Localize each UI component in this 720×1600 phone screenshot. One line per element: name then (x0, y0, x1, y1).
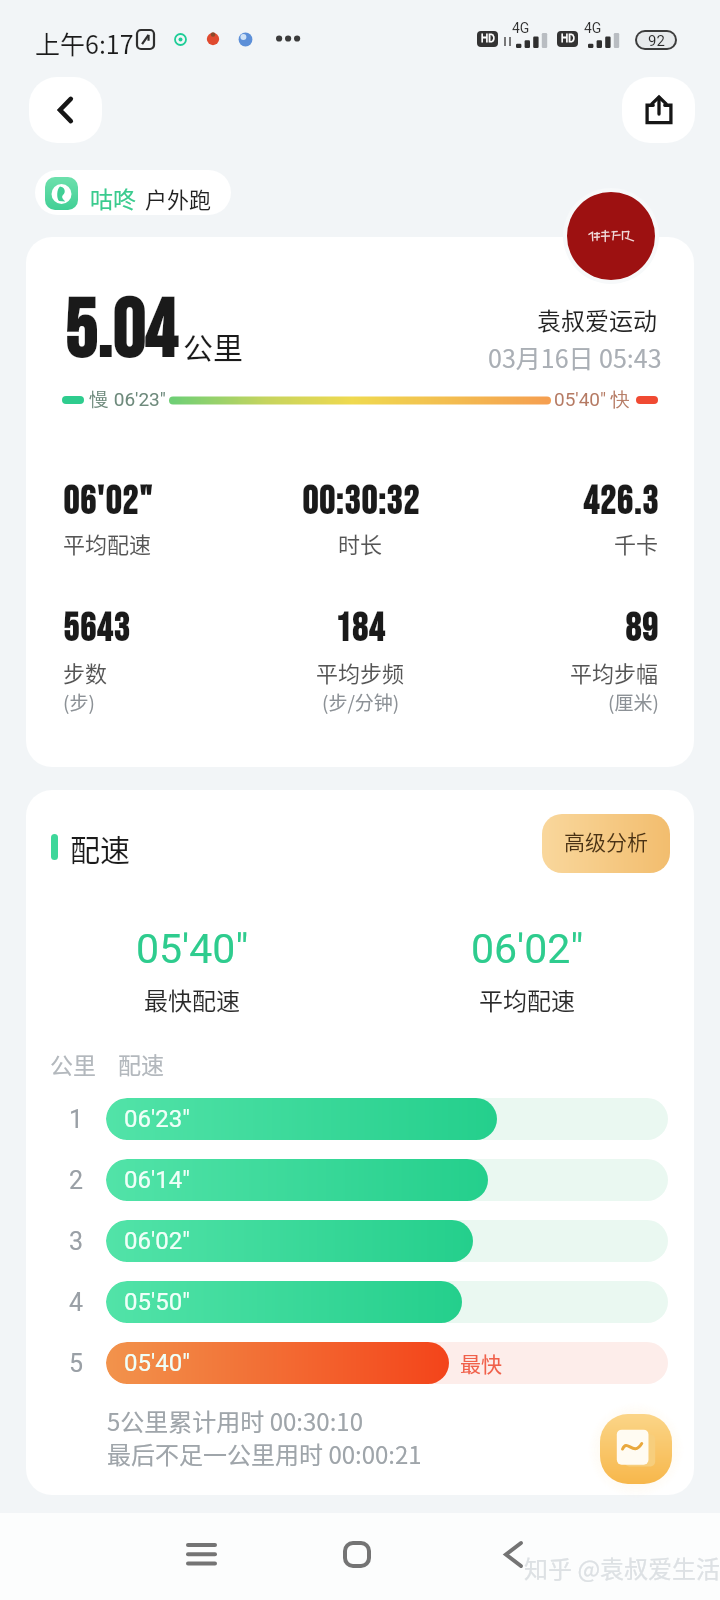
button[interactable]: Share (622, 77, 695, 143)
staticText: 千卡 (614, 527, 659, 559)
staticText: 步数 (63, 656, 108, 688)
staticText: HD (561, 33, 575, 45)
button[interactable]: Home (317, 1524, 397, 1584)
staticText: 平均步频 (316, 656, 405, 688)
staticText: 06'02" (124, 1227, 190, 1255)
staticText: 配速 (118, 1047, 164, 1080)
staticText: 5643 (63, 606, 131, 653)
staticText: 最后不足一公里用时 00:00:21 (107, 1436, 422, 1471)
staticText: 06'02" (63, 479, 154, 526)
staticText: 户外跑 (145, 182, 212, 214)
staticText: 高级分析 (564, 826, 648, 856)
staticText: 184 (335, 606, 386, 653)
button[interactable]: 06'23" (106, 1098, 668, 1140)
staticText: (厘米) (608, 688, 659, 716)
staticText: 426.3 (583, 479, 659, 526)
button[interactable]: 05'50" (106, 1281, 668, 1323)
button[interactable]: Feedback (600, 1414, 672, 1484)
staticText: 1 (69, 1105, 84, 1134)
staticText: 袁叔爱运动 (537, 302, 657, 337)
staticText: 92 (648, 32, 665, 48)
staticText: 平均步幅 (570, 656, 659, 688)
button[interactable]: Back (473, 1524, 553, 1584)
staticText: 06'02" (471, 925, 584, 973)
staticText: 2 (69, 1166, 84, 1195)
staticText: 5.04 (64, 284, 177, 381)
staticText: 配速 (70, 826, 130, 869)
staticText: 平均配速 (479, 982, 575, 1017)
button[interactable]: 06'14" (106, 1159, 668, 1201)
staticText: 05'40" (136, 925, 249, 973)
staticText: 4 (69, 1288, 84, 1317)
staticText: 06'14" (124, 1166, 190, 1194)
button[interactable]: 06'02" (106, 1220, 668, 1262)
staticText: HD (481, 33, 495, 45)
staticText: 03月16日 05:43 (488, 339, 662, 375)
button[interactable]: Profile (567, 192, 655, 280)
staticText: 05'50" (124, 1288, 190, 1316)
staticText: 慢 06'23" (90, 388, 166, 412)
staticText: (步) (63, 688, 95, 716)
staticText: 咕咚 (90, 181, 136, 214)
staticText: 知乎 @袁叔爱生活 (524, 1550, 720, 1585)
staticText: 公里 (183, 324, 243, 367)
staticText: 05'40" (124, 1349, 190, 1377)
staticText: 公里 (50, 1047, 96, 1080)
staticText: 5公里累计用时 00:30:10 (107, 1403, 363, 1438)
staticText: 89 (625, 606, 659, 653)
staticText: 4G (512, 20, 530, 36)
button[interactable]: 05'40" (106, 1342, 668, 1384)
staticText: 05'40" 快 (554, 388, 630, 412)
staticText: 时长 (338, 527, 383, 559)
button[interactable]: 咕咚 (35, 170, 231, 215)
staticText: 最快配速 (144, 982, 240, 1017)
button[interactable]: Back (29, 77, 102, 143)
staticText: 5 (69, 1349, 84, 1378)
staticText: 4G (584, 20, 602, 36)
staticText: 00:30:32 (302, 479, 420, 526)
staticText: 平均配速 (63, 527, 152, 559)
staticText: 06'23" (124, 1105, 190, 1133)
staticText: 3 (69, 1227, 84, 1256)
button[interactable]: 高级分析 (542, 814, 670, 873)
button[interactable]: Recent apps (161, 1524, 241, 1584)
staticText: 上午6:17 (35, 25, 134, 61)
staticText: (步/分钟) (322, 688, 400, 716)
staticText: 最快 (460, 1348, 502, 1378)
